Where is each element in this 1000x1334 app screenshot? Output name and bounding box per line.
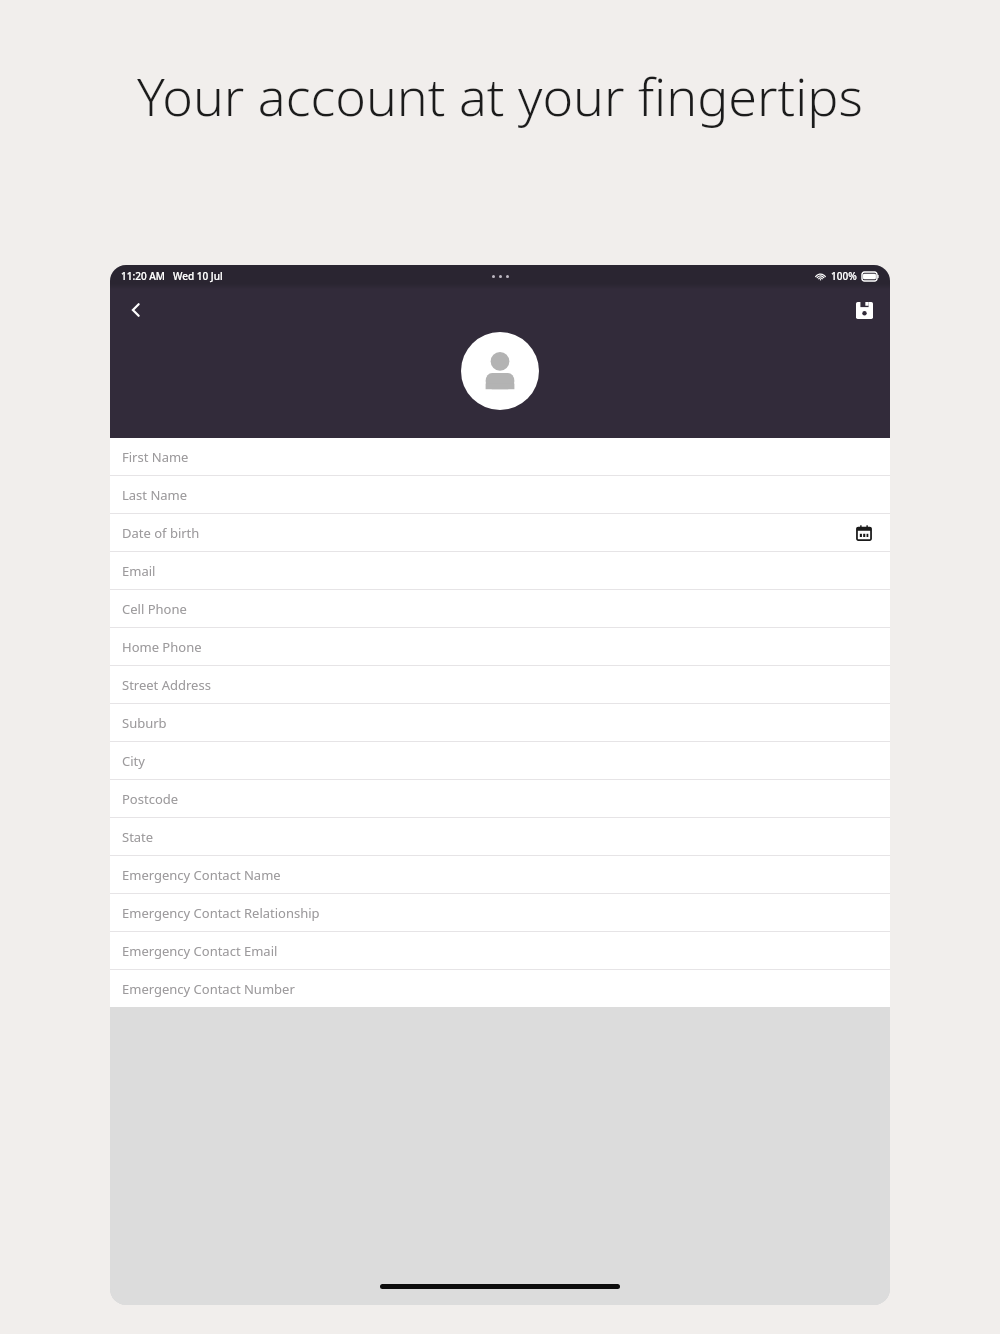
staticText: 100% [831,269,857,283]
staticText: Suburb [122,714,167,732]
staticText: Postcode [122,790,179,808]
button[interactable]: Street Address [110,666,890,703]
button[interactable]: Emergency Contact Number [110,970,890,1007]
staticText: First Name [122,448,189,466]
button[interactable]: Emergency Contact Name [110,856,890,893]
staticText: Emergency Contact Name [122,866,281,884]
button[interactable]: Save [844,290,884,330]
staticText: Home Phone [122,638,202,656]
button[interactable]: Back [116,290,156,330]
button[interactable]: State [110,818,890,855]
button[interactable]: Emergency Contact Email [110,932,890,969]
staticText: Emergency Contact Email [122,942,278,960]
button[interactable]: City [110,742,890,779]
button[interactable]: Email [110,552,890,589]
staticText: Cell Phone [122,600,187,618]
staticText: Your account at your fingertips [137,60,863,131]
button[interactable]: Suburb [110,704,890,741]
button[interactable]: Date of birth [110,514,890,551]
staticText: Wed 10 Jul [173,269,223,283]
staticText: Date of birth [122,524,200,542]
staticText: Emergency Contact Number [122,980,295,998]
staticText: City [122,752,145,770]
button[interactable]: Postcode [110,780,890,817]
button[interactable]: Cell Phone [110,590,890,627]
button[interactable]: Last Name [110,476,890,513]
staticText: Emergency Contact Relationship [122,904,320,922]
staticText: State [122,828,154,846]
staticText: 11:20 AM [121,269,165,283]
staticText: Street Address [122,676,211,694]
button[interactable]: First Name [110,438,890,475]
button[interactable]: Emergency Contact Relationship [110,894,890,931]
button[interactable]: Profile photo [461,332,539,410]
button[interactable]: Home Phone [110,628,890,665]
staticText: Last Name [122,486,188,504]
staticText: Email [122,562,156,580]
